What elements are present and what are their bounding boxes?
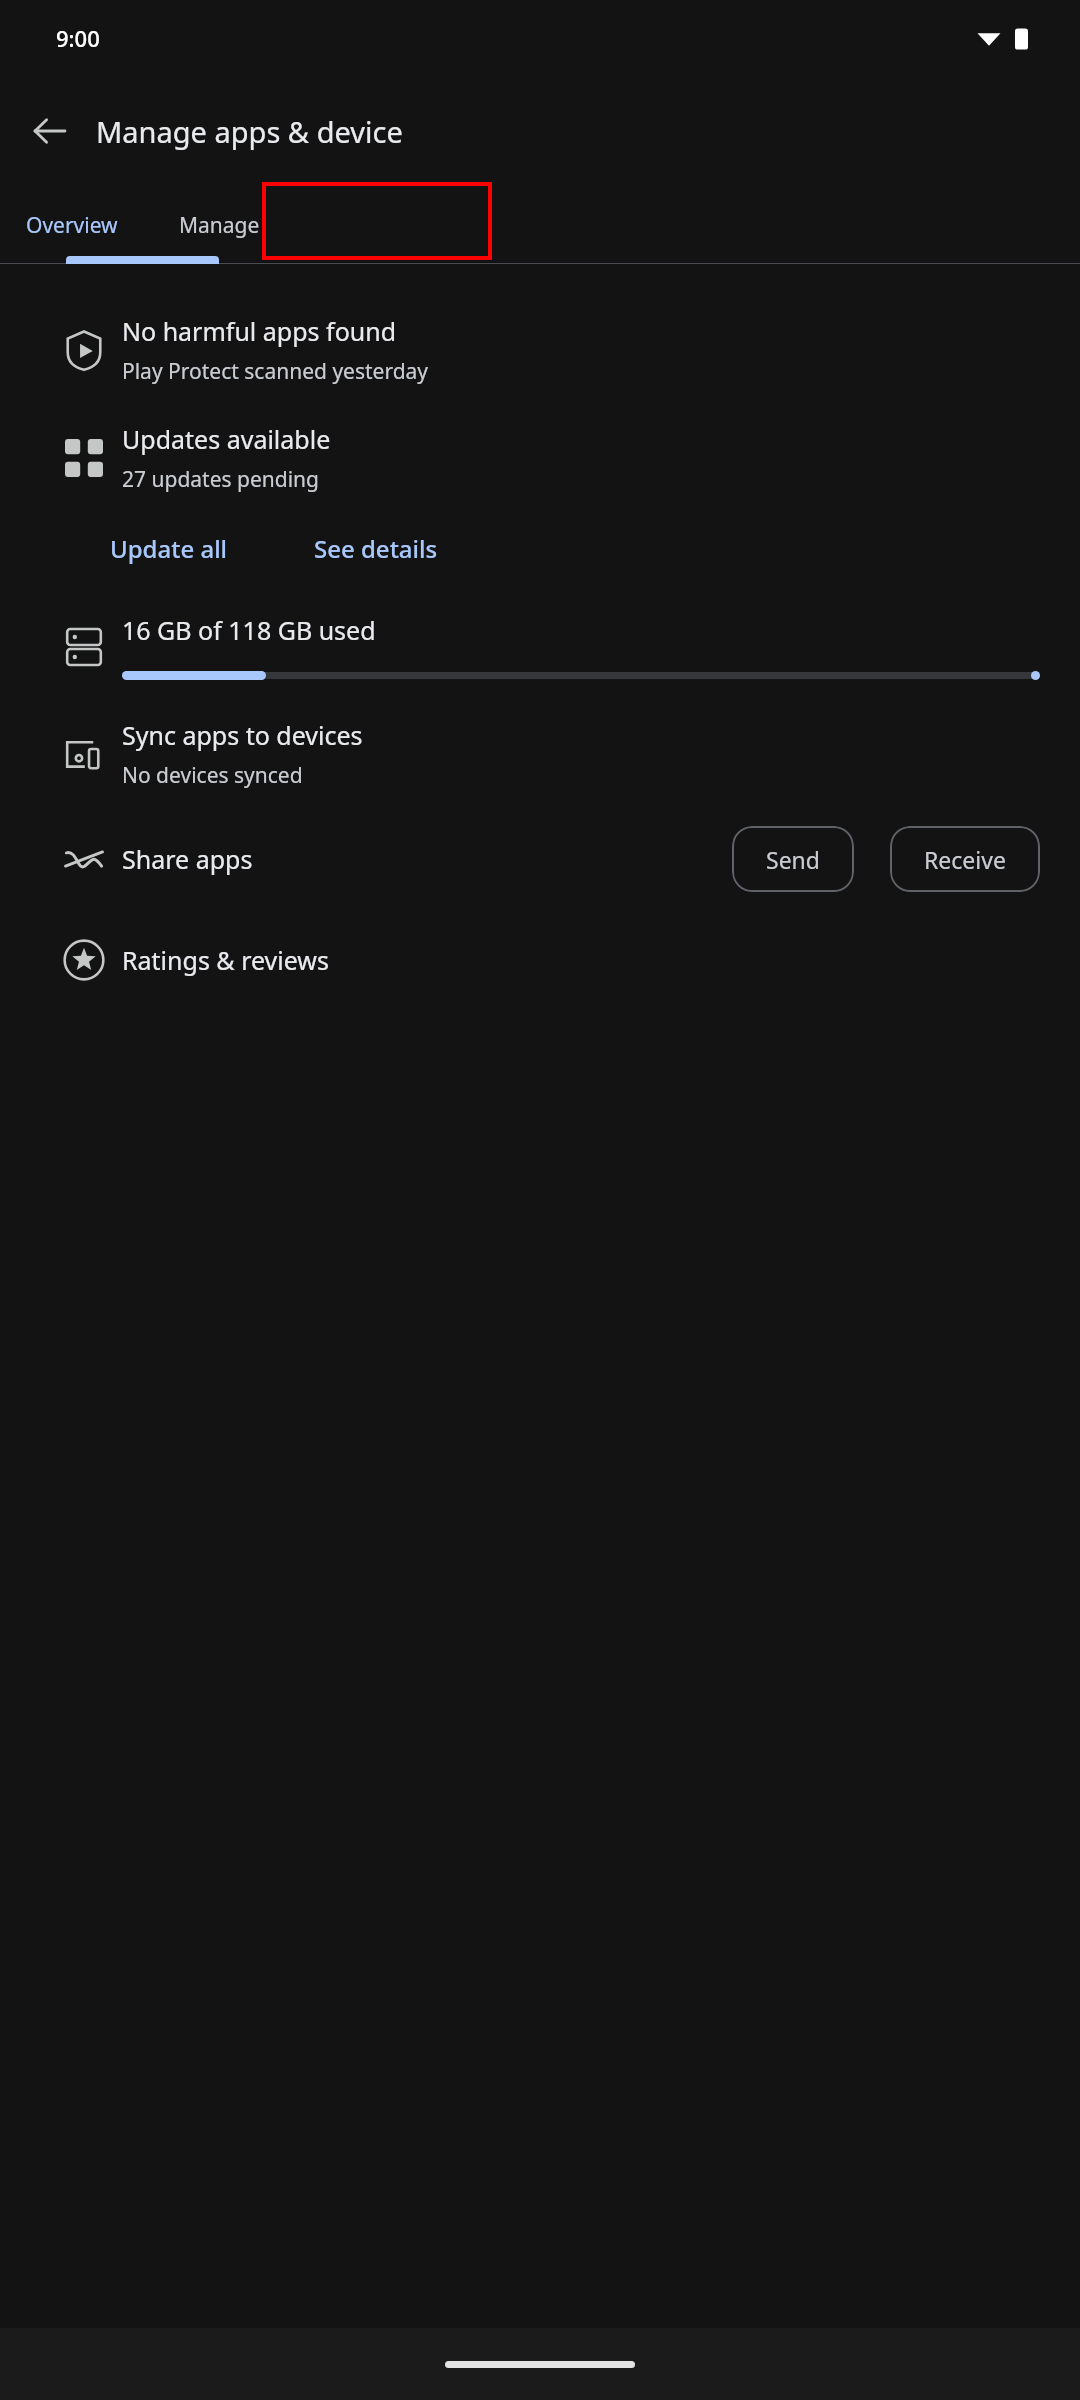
- staticText: Send: [766, 844, 820, 875]
- staticText: 16 GB of 118 GB used: [122, 613, 376, 647]
- staticText: No devices synced: [122, 761, 303, 790]
- button[interactable]: Ratings & reviews: [0, 920, 1080, 1000]
- button[interactable]: Sync apps to devices: [0, 710, 1080, 798]
- staticText: Receive: [924, 844, 1006, 875]
- button[interactable]: Manage: [143, 186, 296, 264]
- staticText: Play Protect scanned yesterday: [122, 357, 429, 386]
- button[interactable]: Overview: [0, 186, 143, 264]
- staticText: 27 updates pending: [122, 465, 319, 494]
- button[interactable]: Back: [22, 103, 78, 159]
- button[interactable]: No harmful apps found: [0, 306, 1080, 394]
- staticText: Update all: [110, 532, 228, 565]
- staticText: Manage: [179, 211, 260, 240]
- button[interactable]: Receive: [890, 826, 1040, 892]
- staticText: Overview: [26, 211, 118, 240]
- staticText: Manage apps & device: [96, 112, 403, 151]
- button[interactable]: Updates available: [0, 414, 1080, 502]
- button[interactable]: See details: [310, 528, 442, 569]
- staticText: Ratings & reviews: [122, 943, 329, 977]
- staticText: Share apps: [122, 842, 253, 876]
- button[interactable]: Update all: [106, 528, 232, 569]
- staticText: Sync apps to devices: [122, 718, 363, 752]
- staticText: Updates available: [122, 422, 331, 456]
- button[interactable]: 16 GB of 118 GB used: [0, 607, 1080, 686]
- button[interactable]: Send: [732, 826, 854, 892]
- staticText: 9:00: [56, 23, 100, 53]
- staticText: See details: [314, 532, 438, 565]
- staticText: No harmful apps found: [122, 314, 397, 348]
